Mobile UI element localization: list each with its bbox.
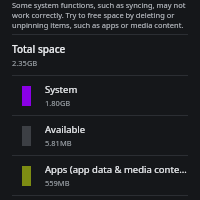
button[interactable]: Total space [0,35,200,75]
button[interactable]: Apps (app data & media content) [0,156,200,195]
staticText: 559MB [45,178,70,188]
staticText: Total space [12,42,66,56]
button[interactable]: System [0,76,200,115]
staticText: Some system functions, such as syncing, … [12,0,188,30]
staticText: 2.35GB [12,58,38,68]
staticText: Apps (app data & media content) [45,163,190,176]
staticText: System [45,83,78,96]
staticText: 1.80GB [45,98,71,108]
staticText: 5.81MB [45,138,72,148]
button[interactable]: Available [0,116,200,155]
staticText: Available [45,123,86,136]
